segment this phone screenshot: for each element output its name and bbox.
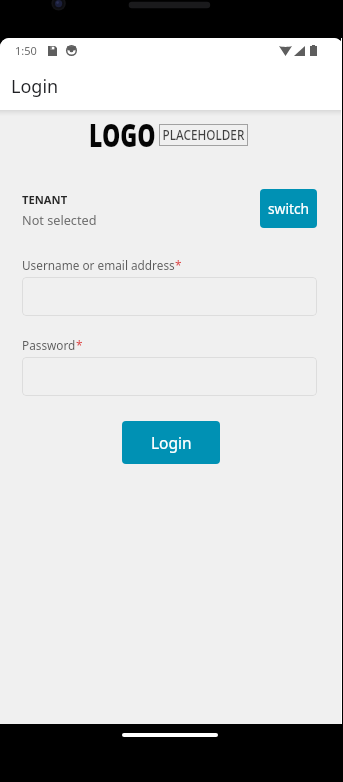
button[interactable]: switch (260, 189, 317, 228)
staticText: switch (268, 199, 310, 218)
staticText: PLACEHOLDER (163, 124, 244, 144)
staticText: Login (11, 74, 59, 99)
other: Home gesture handle (122, 733, 218, 737)
staticText: Login (151, 432, 192, 453)
button[interactable]: Password (22, 357, 317, 396)
staticText: * (76, 337, 83, 353)
button[interactable]: Username or email address (22, 277, 317, 316)
staticText: * (175, 257, 182, 273)
staticText: Password (22, 337, 76, 353)
staticText: TENANT (22, 192, 68, 207)
staticText: LOGO (89, 113, 156, 157)
button[interactable]: Login (122, 421, 220, 464)
staticText: 1:50 (15, 43, 37, 58)
staticText: Not selected (22, 211, 97, 228)
staticText: Username or email address (22, 257, 175, 273)
